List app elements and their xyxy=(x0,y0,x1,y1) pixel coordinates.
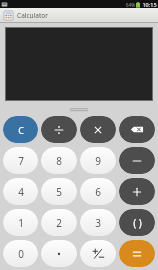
button[interactable]: = xyxy=(119,240,155,267)
staticText: 7 xyxy=(18,154,24,168)
button[interactable]: Decimal point xyxy=(41,240,77,267)
staticText: 10:15 xyxy=(142,1,157,8)
staticText: ( ) xyxy=(133,216,142,230)
button[interactable]: 5 xyxy=(41,178,77,205)
staticText: 3 xyxy=(95,216,101,230)
button[interactable]: 2 xyxy=(41,209,77,236)
button[interactable]: C xyxy=(3,116,38,143)
button[interactable]: × xyxy=(80,116,116,143)
button[interactable]: ÷ xyxy=(41,116,77,143)
staticText: 64% xyxy=(126,2,135,8)
button[interactable]: 3 xyxy=(80,209,116,236)
button[interactable]: − xyxy=(119,147,155,174)
staticText: 1 xyxy=(18,216,24,230)
button[interactable]: 1 xyxy=(3,209,38,236)
staticText: 6 xyxy=(95,185,101,199)
button[interactable]: 6 xyxy=(80,178,116,205)
button[interactable]: Plus minus xyxy=(80,240,116,267)
button[interactable]: 7 xyxy=(3,147,38,174)
staticText: 9 xyxy=(95,154,101,168)
button[interactable]: Backspace xyxy=(119,116,155,143)
staticText: 0 xyxy=(18,247,24,261)
button[interactable]: 8 xyxy=(41,147,77,174)
button[interactable]: ( ) xyxy=(119,209,155,236)
button[interactable]: 9 xyxy=(80,147,116,174)
staticText: 5 xyxy=(56,185,62,199)
staticText: C xyxy=(18,124,24,136)
button[interactable]: 0 xyxy=(3,240,38,267)
button[interactable]: + xyxy=(119,178,155,205)
button[interactable]: Calculator xyxy=(0,8,158,22)
staticText: Calculator xyxy=(17,11,48,20)
staticText: 2 xyxy=(56,216,62,230)
button[interactable]: 4 xyxy=(3,178,38,205)
staticText: 8 xyxy=(56,154,62,168)
staticText: 4 xyxy=(18,185,24,199)
